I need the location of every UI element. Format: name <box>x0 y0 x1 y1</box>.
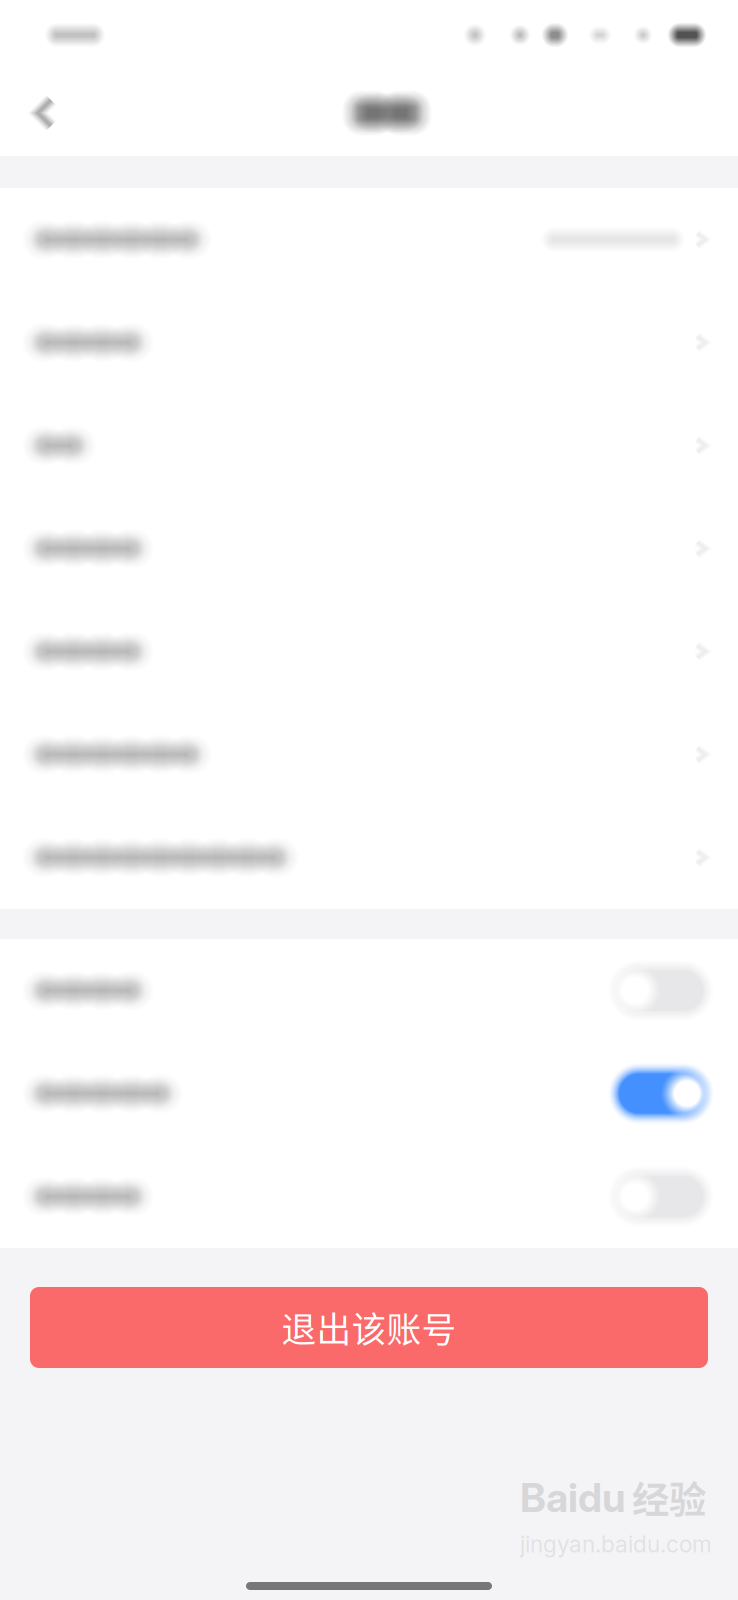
button[interactable]: Settings item <box>0 703 738 806</box>
button[interactable]: Setting, on <box>0 1042 738 1145</box>
button[interactable]: Setting, off <box>0 939 738 1042</box>
button[interactable]: Back <box>0 70 88 156</box>
button[interactable]: Settings item <box>0 394 738 497</box>
button[interactable]: Settings item <box>0 291 738 394</box>
button[interactable]: Settings item <box>0 188 738 291</box>
staticText: jingyan.baidu.com <box>520 1531 712 1558</box>
button[interactable]: Settings item <box>0 600 738 703</box>
staticText: Baidu <box>520 1473 626 1522</box>
button[interactable]: Settings item <box>0 497 738 600</box>
button[interactable]: Setting, off <box>0 1145 738 1248</box>
button[interactable]: 退出该账号 <box>30 1287 708 1368</box>
staticText: 经验 <box>632 1470 706 1525</box>
button[interactable]: Settings item <box>0 806 738 909</box>
staticText: 退出该账号 <box>281 1302 456 1353</box>
